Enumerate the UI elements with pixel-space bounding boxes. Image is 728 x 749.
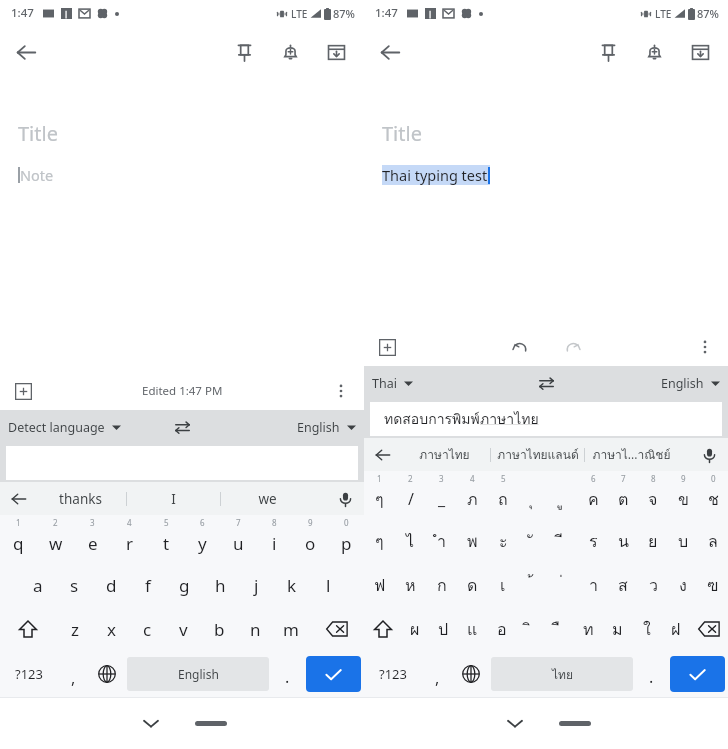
button[interactable]: ?123 <box>364 651 421 697</box>
button[interactable]: 0 <box>328 515 364 563</box>
button[interactable]: . <box>635 651 667 697</box>
button[interactable]: Voice input <box>695 441 723 469</box>
button[interactable]: ฃ <box>698 563 728 607</box>
button[interactable]: Archive <box>680 32 720 72</box>
button[interactable]: ก <box>426 563 457 607</box>
button[interactable]: ั <box>518 519 548 563</box>
button[interactable]: Change language <box>453 651 489 697</box>
button[interactable]: ฟ <box>364 563 395 607</box>
button[interactable]: 4 <box>111 515 148 563</box>
button[interactable]: Add <box>372 332 402 362</box>
button[interactable]: ้ <box>518 563 548 607</box>
button[interactable]: Shift <box>0 607 56 651</box>
button[interactable]: Done <box>306 656 361 692</box>
button[interactable]: Swap languages <box>166 411 198 443</box>
button[interactable]: j <box>238 563 274 607</box>
button[interactable]: . <box>271 651 303 697</box>
button[interactable]: า <box>578 563 608 607</box>
button[interactable]: , <box>57 651 89 697</box>
button[interactable]: ห <box>395 563 426 607</box>
button[interactable]: Back <box>369 441 397 469</box>
button[interactable]: Detect language <box>8 419 121 436</box>
button[interactable]: Archive <box>316 32 356 72</box>
button[interactable]: Reminder <box>634 32 674 72</box>
button[interactable]: ฝ <box>661 607 690 651</box>
button[interactable]: ล <box>698 519 728 563</box>
button[interactable]: m <box>273 607 309 651</box>
button[interactable]: we <box>221 482 314 515</box>
button[interactable]: 6 <box>578 471 608 519</box>
button[interactable]: บ <box>668 519 698 563</box>
button[interactable]: Hide keyboard <box>134 706 168 740</box>
button[interactable]: Home <box>544 706 606 740</box>
button[interactable]: k <box>274 563 310 607</box>
button[interactable]: 6 <box>184 515 220 563</box>
button[interactable]: แ <box>458 607 487 651</box>
button[interactable]: , <box>421 651 453 697</box>
button[interactable]: Undo <box>504 331 536 363</box>
button[interactable]: x <box>93 607 129 651</box>
button[interactable]: 4 <box>457 471 488 519</box>
button[interactable]: ด <box>457 563 488 607</box>
button[interactable]: ุ <box>518 471 548 519</box>
button[interactable]: ื <box>545 607 574 651</box>
button[interactable]: ไ <box>395 519 426 563</box>
button[interactable]: d <box>93 563 130 607</box>
button[interactable]: Change language <box>89 651 125 697</box>
button[interactable]: a <box>19 563 56 607</box>
button[interactable]: English <box>661 375 720 392</box>
button[interactable]: ง <box>668 563 698 607</box>
button[interactable]: 1 <box>364 471 395 519</box>
button[interactable]: พ <box>457 519 488 563</box>
button[interactable]: g <box>166 563 202 607</box>
button[interactable]: Pin <box>224 32 264 72</box>
button[interactable]: Swap languages <box>530 367 562 399</box>
button[interactable]: ิ <box>516 607 545 651</box>
button[interactable]: 0 <box>698 471 728 519</box>
button[interactable]: Done <box>670 656 725 692</box>
button[interactable]: 3 <box>74 515 111 563</box>
button[interactable]: 3 <box>426 471 457 519</box>
button[interactable]: ๆ <box>364 519 395 563</box>
button[interactable]: thanks <box>34 482 126 515</box>
button[interactable]: ป <box>429 607 458 651</box>
button[interactable]: Backspace <box>309 607 364 651</box>
button[interactable]: ?123 <box>0 651 57 697</box>
button[interactable]: Redo <box>556 331 588 363</box>
button[interactable]: Reminder <box>270 32 310 72</box>
button[interactable]: 1 <box>0 515 37 563</box>
button[interactable]: 5 <box>148 515 184 563</box>
button[interactable]: ส <box>608 563 638 607</box>
button[interactable]: 7 <box>220 515 256 563</box>
button[interactable]: Thai <box>372 375 413 392</box>
button[interactable]: Shift <box>364 607 401 651</box>
button[interactable]: 9 <box>292 515 328 563</box>
button[interactable]: b <box>201 607 237 651</box>
button[interactable]: ม <box>603 607 632 651</box>
button[interactable]: น <box>608 519 638 563</box>
button[interactable]: 7 <box>608 471 638 519</box>
button[interactable]: 5 <box>488 471 518 519</box>
button[interactable]: v <box>165 607 201 651</box>
button[interactable]: 2 <box>37 515 74 563</box>
button[interactable]: ว <box>638 563 668 607</box>
button[interactable]: Home <box>180 706 242 740</box>
button[interactable]: n <box>237 607 273 651</box>
button[interactable]: Voice input <box>331 485 359 513</box>
button[interactable]: Back <box>6 32 46 72</box>
button[interactable]: More options <box>690 332 720 362</box>
button[interactable]: ภาษาไทยแลนด์ <box>491 438 584 471</box>
button[interactable]: ู <box>548 471 578 519</box>
button[interactable]: 8 <box>256 515 292 563</box>
button[interactable]: ภาษาไทย <box>398 438 490 471</box>
button[interactable]: Hide keyboard <box>498 706 532 740</box>
button[interactable]: Backspace <box>690 607 728 651</box>
button[interactable]: ร <box>578 519 608 563</box>
button[interactable]: z <box>56 607 93 651</box>
button[interactable]: ะ <box>488 519 518 563</box>
button[interactable]: ำ <box>426 519 457 563</box>
button[interactable]: f <box>130 563 166 607</box>
button[interactable]: เ <box>488 563 518 607</box>
button[interactable]: ผ <box>401 607 429 651</box>
